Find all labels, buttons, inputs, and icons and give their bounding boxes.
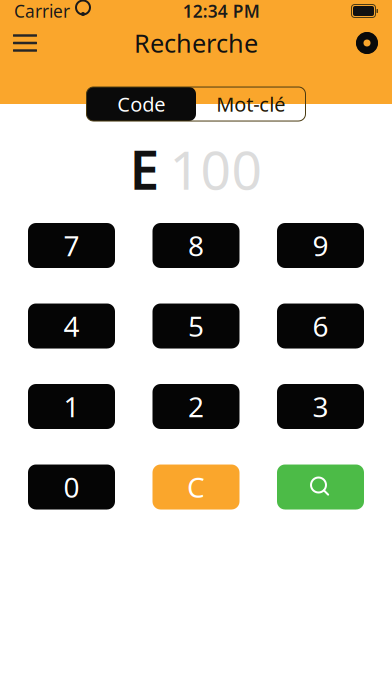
staticText: C [187,468,205,506]
button[interactable]: Menu [3,23,47,63]
button[interactable]: 1 [28,384,115,429]
button[interactable]: Code [86,87,196,121]
button[interactable]: Settings [345,23,389,63]
staticText: Code [117,91,165,117]
button[interactable]: 3 [277,384,364,429]
button[interactable]: 8 [152,223,239,268]
staticText: 4 [63,307,79,345]
staticText: 100 [169,134,262,204]
button[interactable]: 6 [277,303,364,348]
staticText: Mot-clé [216,91,285,117]
button[interactable]: 0 [28,464,115,509]
staticText: Recherche [134,26,258,60]
staticText: 12:34 PM [183,0,260,22]
staticText: Carrier [14,0,70,22]
staticText: 1 [63,388,79,425]
button[interactable]: C [152,464,239,509]
button[interactable]: Search [277,464,364,509]
staticText: 2 [188,388,204,425]
staticText: 7 [63,227,79,264]
staticText: 5 [188,307,204,345]
staticText: 3 [312,388,328,425]
button[interactable]: 5 [152,303,239,348]
staticText: 9 [312,227,328,264]
staticText: 8 [188,227,204,264]
button[interactable]: 7 [28,223,115,268]
staticText: 0 [63,468,79,506]
button[interactable]: 9 [277,223,364,268]
staticText: 6 [312,307,328,345]
staticText: E [129,134,159,204]
button[interactable]: Mot-clé [196,87,305,121]
button[interactable]: 2 [152,384,239,429]
button[interactable]: 4 [28,303,115,348]
